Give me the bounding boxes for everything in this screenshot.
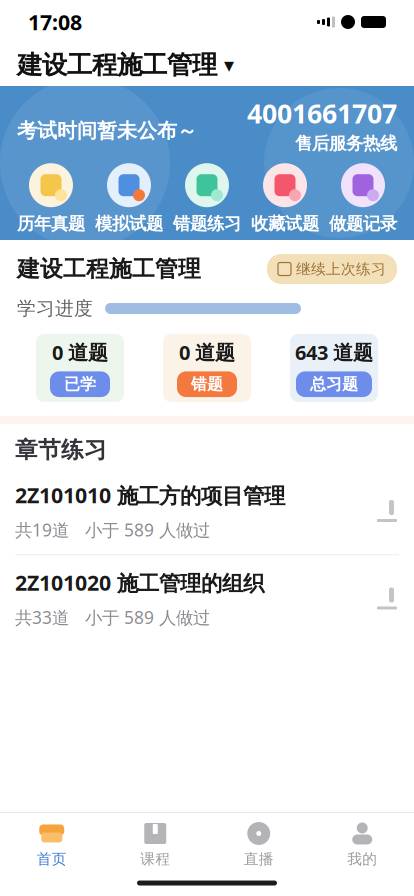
staticText: 错题练习 [173, 213, 241, 234]
staticText: 模拟试题 [95, 213, 163, 234]
button[interactable]: 历年真题 [12, 162, 90, 234]
staticText: 售后服务热线 [295, 133, 397, 154]
staticText: 考试时间暂未公布～ [17, 119, 197, 143]
staticText: 建设工程施工管理 [17, 49, 217, 80]
staticText: 共19道 [15, 518, 69, 541]
staticText: 共33道 [15, 606, 69, 629]
staticText: 首页 [37, 850, 67, 868]
staticText: 2Z101020 施工管理的组织 [15, 568, 264, 597]
button[interactable]: 4001661707 [247, 95, 397, 154]
button[interactable]: 继续上次练习 [267, 254, 397, 284]
staticText: 建设工程施工管理 [17, 255, 201, 283]
button[interactable]: 2Z101040 建设工程项目目标的动态控制 [0, 870, 414, 896]
button[interactable]: 首页 [0, 821, 103, 868]
staticText: 历年真题 [17, 213, 85, 234]
button[interactable]: 收藏试题 [246, 162, 324, 234]
staticText: 643 道题 [295, 339, 373, 365]
staticText: 继续上次练习 [296, 260, 386, 278]
staticText: 小于 589 人做过 [85, 606, 210, 629]
button[interactable]: 模拟试题 [90, 162, 168, 234]
staticText: 2Z101010 施工方的项目管理 [15, 481, 285, 509]
button[interactable]: 课程 [103, 821, 207, 868]
button[interactable]: 2Z101020 施工管理的组织 [0, 555, 414, 643]
staticText: 课程 [140, 850, 170, 868]
button[interactable]: 2Z101050 施工项目经理的任务和责任 [0, 756, 414, 870]
staticText: 共16道 [15, 833, 69, 856]
staticText: 0 道题 [179, 339, 235, 365]
staticText: 总习题 [310, 374, 358, 394]
button[interactable]: 我的 [310, 821, 414, 868]
button[interactable]: 2Z101010 施工方的项目管理 [0, 468, 414, 555]
staticText: 做题记录 [329, 213, 397, 234]
staticText: 已学 [64, 374, 96, 394]
staticText: 章节练习 [15, 436, 107, 464]
staticText: 小于 589 人做过 [85, 833, 210, 856]
staticText: 我的 [347, 850, 377, 868]
staticText: 2Z101050 施工项目经理的任务和责任 [15, 769, 348, 824]
staticText: 收藏试题 [251, 213, 319, 234]
staticText: 17:08 [28, 8, 82, 36]
staticText: 小于 589 人做过 [85, 518, 210, 541]
staticText: 错题 [191, 374, 223, 394]
staticText: 2Z101040 建设工程项目目标的动态控制 [15, 883, 348, 896]
staticText: 直播 [244, 850, 274, 868]
staticText: 0 道题 [52, 339, 108, 365]
button[interactable]: 错题练习 [168, 162, 246, 234]
button[interactable]: 做题记录 [324, 162, 402, 234]
button[interactable]: 直播 [207, 821, 310, 868]
button[interactable]: 建设工程施工管理 [17, 49, 234, 80]
staticText: ▾ [224, 54, 234, 76]
staticText: 4001661707 [247, 95, 397, 131]
staticText: 学习进度 [17, 297, 93, 320]
